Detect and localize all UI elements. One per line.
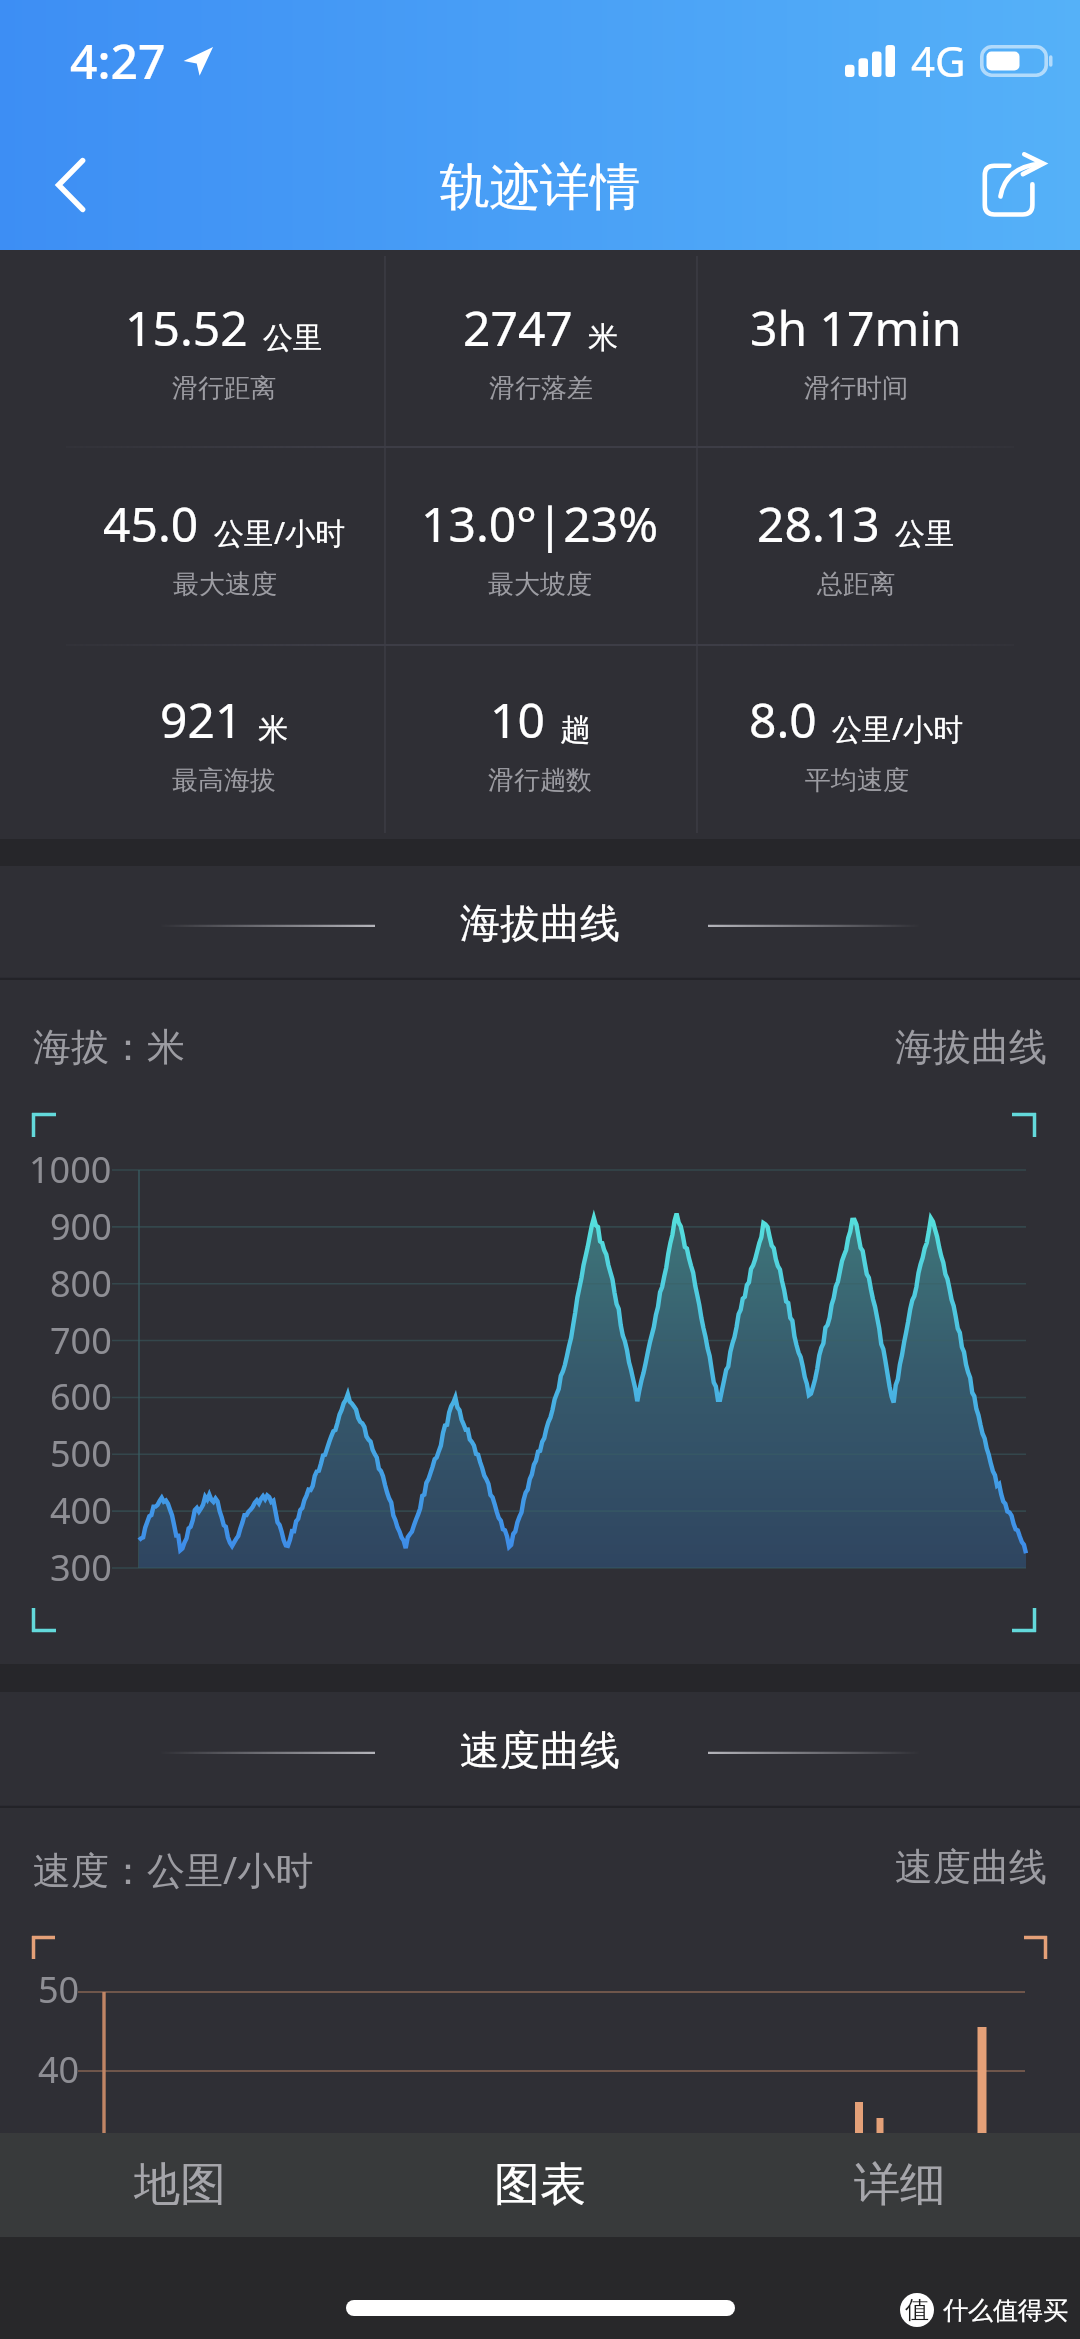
staticText: 滑行距离 bbox=[172, 372, 276, 405]
staticText: 什么值得买 bbox=[943, 2295, 1068, 2326]
staticText: 平均速度 bbox=[805, 764, 909, 797]
staticText: 300 bbox=[50, 1543, 112, 1592]
staticText: 详细 bbox=[854, 2156, 946, 2214]
staticText: 速度曲线 bbox=[895, 1843, 1047, 1891]
staticText: 600 bbox=[50, 1372, 112, 1421]
staticText: 海拔曲线 bbox=[460, 898, 620, 948]
staticText: 公里 bbox=[895, 515, 955, 553]
staticText: 滑行落差 bbox=[489, 372, 593, 405]
staticText: 轨迹详情 bbox=[440, 156, 640, 219]
staticText: 3h 17min bbox=[750, 295, 962, 360]
staticText: 50 bbox=[38, 1965, 80, 2014]
staticText: 最大坡度 bbox=[488, 568, 592, 601]
staticText: 总距离 bbox=[817, 568, 895, 601]
staticText: 4:27 bbox=[70, 28, 166, 93]
staticText: 趟 bbox=[560, 711, 590, 749]
staticText: 海拔：米 bbox=[33, 1023, 185, 1071]
staticText: 15.52 bbox=[125, 295, 248, 360]
staticText: 值 bbox=[905, 2295, 929, 2325]
staticText: 921 bbox=[160, 687, 243, 752]
staticText: 45.0 bbox=[103, 491, 199, 556]
button[interactable]: 详细 bbox=[720, 2133, 1080, 2237]
staticText: 700 bbox=[50, 1316, 112, 1365]
staticText: 滑行趟数 bbox=[488, 764, 592, 797]
button[interactable]: 地图 bbox=[0, 2133, 360, 2237]
staticText: 公里 bbox=[263, 319, 323, 357]
staticText: 400 bbox=[50, 1486, 112, 1535]
staticText: 500 bbox=[50, 1429, 112, 1478]
staticText: 图表 bbox=[494, 2156, 586, 2214]
staticText: 800 bbox=[50, 1259, 112, 1308]
staticText: 1000 bbox=[29, 1145, 112, 1194]
button[interactable]: 图表 bbox=[360, 2133, 720, 2237]
button[interactable]: 分享 bbox=[960, 133, 1064, 237]
staticText: 海拔曲线 bbox=[895, 1023, 1047, 1071]
staticText: 28.13 bbox=[757, 491, 880, 556]
button[interactable]: 返回 bbox=[22, 137, 118, 233]
staticText: 4G bbox=[911, 32, 966, 89]
staticText: 40 bbox=[38, 2045, 80, 2094]
staticText: 地图 bbox=[134, 2156, 226, 2214]
staticText: 速度：公里/小时 bbox=[33, 1843, 314, 1895]
staticText: 2747 bbox=[463, 295, 573, 360]
staticText: 米 bbox=[258, 711, 288, 749]
staticText: 公里/小时 bbox=[214, 512, 346, 553]
staticText: 速度曲线 bbox=[460, 1725, 620, 1775]
staticText: 滑行时间 bbox=[804, 372, 908, 405]
staticText: 13.0°|23% bbox=[421, 491, 659, 556]
staticText: 900 bbox=[50, 1202, 112, 1251]
staticText: 10 bbox=[490, 687, 545, 752]
staticText: 公里/小时 bbox=[832, 708, 964, 749]
staticText: 8.0 bbox=[749, 687, 817, 752]
staticText: 米 bbox=[588, 319, 618, 357]
staticText: 最大速度 bbox=[173, 568, 277, 601]
staticText: 最高海拔 bbox=[172, 764, 276, 797]
